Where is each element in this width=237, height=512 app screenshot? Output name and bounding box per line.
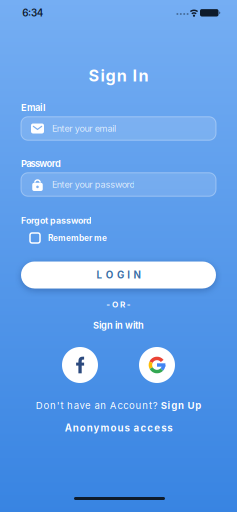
staticText: Sign in with [93, 320, 144, 331]
staticText: n [73, 422, 79, 434]
staticText: R [120, 299, 125, 309]
staticText: Forgot password [21, 215, 92, 226]
staticText: ? [153, 400, 158, 411]
staticText: - [106, 299, 110, 309]
button[interactable]: Sign in with Facebook [62, 347, 98, 383]
button[interactable]: S [161, 400, 201, 411]
button[interactable]: Enter your email [21, 117, 216, 140]
staticText: s [161, 422, 166, 434]
staticText: t [60, 400, 63, 411]
staticText: n [50, 400, 56, 411]
staticText: n [87, 422, 93, 434]
button[interactable]: A [65, 422, 172, 434]
staticText: n [178, 400, 184, 411]
staticText: c [147, 422, 153, 434]
staticText: i [100, 66, 104, 85]
staticText: I [132, 66, 137, 85]
staticText: a [133, 422, 139, 434]
button[interactable]: Enter your password [21, 173, 216, 196]
staticText: e [154, 422, 160, 434]
staticText: Remember me [48, 233, 107, 243]
staticText: s [124, 422, 129, 434]
staticText: N [134, 269, 141, 281]
staticText: I [127, 269, 130, 281]
staticText: ' [57, 400, 60, 411]
staticText: g [106, 66, 116, 85]
staticText: Enter your email [52, 123, 116, 134]
staticText: i [167, 400, 170, 411]
staticText: A [65, 422, 72, 434]
button[interactable]: Remember me [30, 233, 107, 243]
staticText: o [80, 422, 86, 434]
staticText: O [112, 299, 118, 309]
button[interactable]: Sign in with Google [139, 347, 175, 383]
staticText: o [43, 400, 49, 411]
staticText: n [142, 400, 148, 411]
staticText: D [36, 400, 43, 411]
staticText: s [167, 422, 172, 434]
staticText: t [149, 400, 152, 411]
staticText: g [171, 400, 177, 411]
staticText: e [85, 400, 91, 411]
staticText: u [117, 422, 123, 434]
button[interactable]: L [21, 261, 216, 288]
staticText: O [106, 269, 114, 281]
staticText: a [95, 400, 100, 411]
staticText: v [79, 400, 84, 411]
staticText: o [129, 400, 135, 411]
staticText: n [100, 400, 106, 411]
staticText: L [96, 269, 102, 281]
staticText: Password [21, 158, 61, 169]
staticText: A [110, 400, 117, 411]
staticText: Email [21, 102, 46, 113]
staticText: m [101, 422, 110, 434]
staticText: h [67, 400, 73, 411]
staticText: - [127, 299, 131, 309]
staticText: n [139, 66, 149, 85]
staticText: o [110, 422, 116, 434]
staticText: S [88, 66, 99, 85]
staticText: p [195, 400, 201, 411]
staticText: Enter your password [52, 179, 135, 190]
staticText: 6:34 [22, 7, 44, 19]
staticText: n [117, 66, 127, 85]
staticText: u [136, 400, 142, 411]
staticText: a [74, 400, 79, 411]
staticText: U [188, 400, 195, 411]
staticText: c [123, 400, 128, 411]
staticText: G [117, 269, 124, 281]
staticText: S [161, 400, 167, 411]
staticText: y [94, 422, 100, 434]
button[interactable]: Forgot password [21, 215, 92, 226]
staticText: c [117, 400, 122, 411]
staticText: c [140, 422, 146, 434]
